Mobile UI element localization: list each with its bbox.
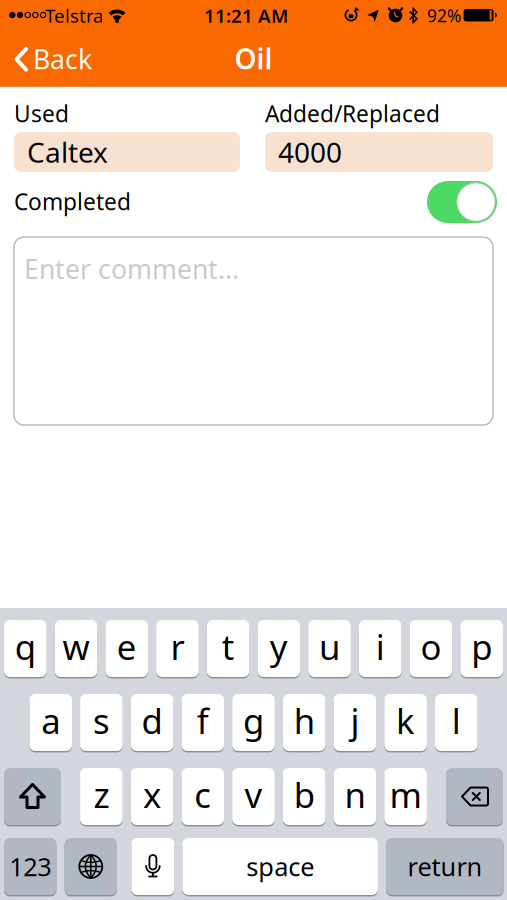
button[interactable]: h [283,694,325,751]
button[interactable]: s [80,694,123,751]
staticText: x [143,771,161,817]
staticText: e [117,623,137,669]
button[interactable]: d [131,694,173,751]
staticText: Enter comment... [24,251,239,286]
button[interactable]: j [334,694,376,751]
staticText: return [407,850,482,883]
staticText: 4000 [278,133,342,171]
staticText: k [396,697,415,743]
staticText: a [41,697,60,743]
staticText: j [350,697,359,743]
staticText: Back [33,41,92,77]
button[interactable]: q [4,620,47,677]
staticText: z [93,771,109,817]
button[interactable]: g [232,694,275,751]
button[interactable]: b [283,768,325,825]
staticText: p [471,623,492,669]
button[interactable]: n [334,768,376,825]
button[interactable]: i [359,620,402,677]
button[interactable]: o [410,620,452,677]
button[interactable]: return [386,838,504,895]
staticText: q [15,623,36,669]
staticText: o [420,623,441,669]
button[interactable]: k [384,694,427,751]
button[interactable]: r [156,620,199,677]
staticText: 11:21 AM [204,3,288,28]
staticText: c [194,771,211,817]
button[interactable]: w [55,620,97,677]
staticText: l [452,697,461,743]
staticText: 92% [427,4,461,27]
staticText: v [244,771,262,817]
staticText: i [376,623,385,669]
button[interactable]: Delete [446,768,503,825]
staticText: Telstra [45,3,103,28]
staticText: y [270,623,288,669]
staticText: Caltex [27,133,108,171]
button[interactable]: Numbers [4,838,56,895]
button[interactable]: Dictate [131,838,174,895]
button[interactable]: t [207,620,249,677]
button[interactable]: Enter comment [14,237,493,425]
staticText: Used [14,98,69,128]
staticText: u [319,623,340,669]
button[interactable]: space [182,838,378,895]
staticText: s [93,697,110,743]
button[interactable]: z [80,768,123,825]
staticText: m [390,771,422,817]
button[interactable]: c [181,768,224,825]
staticText: h [294,697,315,743]
staticText: r [170,623,184,669]
button[interactable]: Completed [427,181,497,223]
staticText: f [197,697,209,743]
staticText: g [243,697,264,743]
staticText: b [294,771,315,817]
staticText: t [222,623,235,669]
staticText: Oil [234,40,272,77]
button[interactable]: a [29,694,72,751]
button[interactable]: Added/Replaced [265,132,493,172]
button[interactable]: Back [4,37,100,81]
button[interactable]: p [460,620,503,677]
staticText: d [142,697,163,743]
staticText: n [344,771,365,817]
staticText: 123 [9,850,51,883]
button[interactable]: Next keyboard [65,838,117,895]
staticText: Completed [14,186,131,216]
staticText: space [246,850,314,883]
button[interactable]: m [384,768,427,825]
button[interactable]: e [105,620,148,677]
button[interactable]: v [232,768,275,825]
button[interactable]: Shift [4,768,61,825]
staticText: Added/Replaced [265,98,440,128]
button[interactable]: x [131,768,173,825]
button[interactable]: u [308,620,351,677]
button[interactable]: f [181,694,224,751]
button[interactable]: Used [14,132,240,172]
staticText: w [63,623,90,669]
button[interactable]: y [258,620,300,677]
button[interactable]: l [435,694,478,751]
